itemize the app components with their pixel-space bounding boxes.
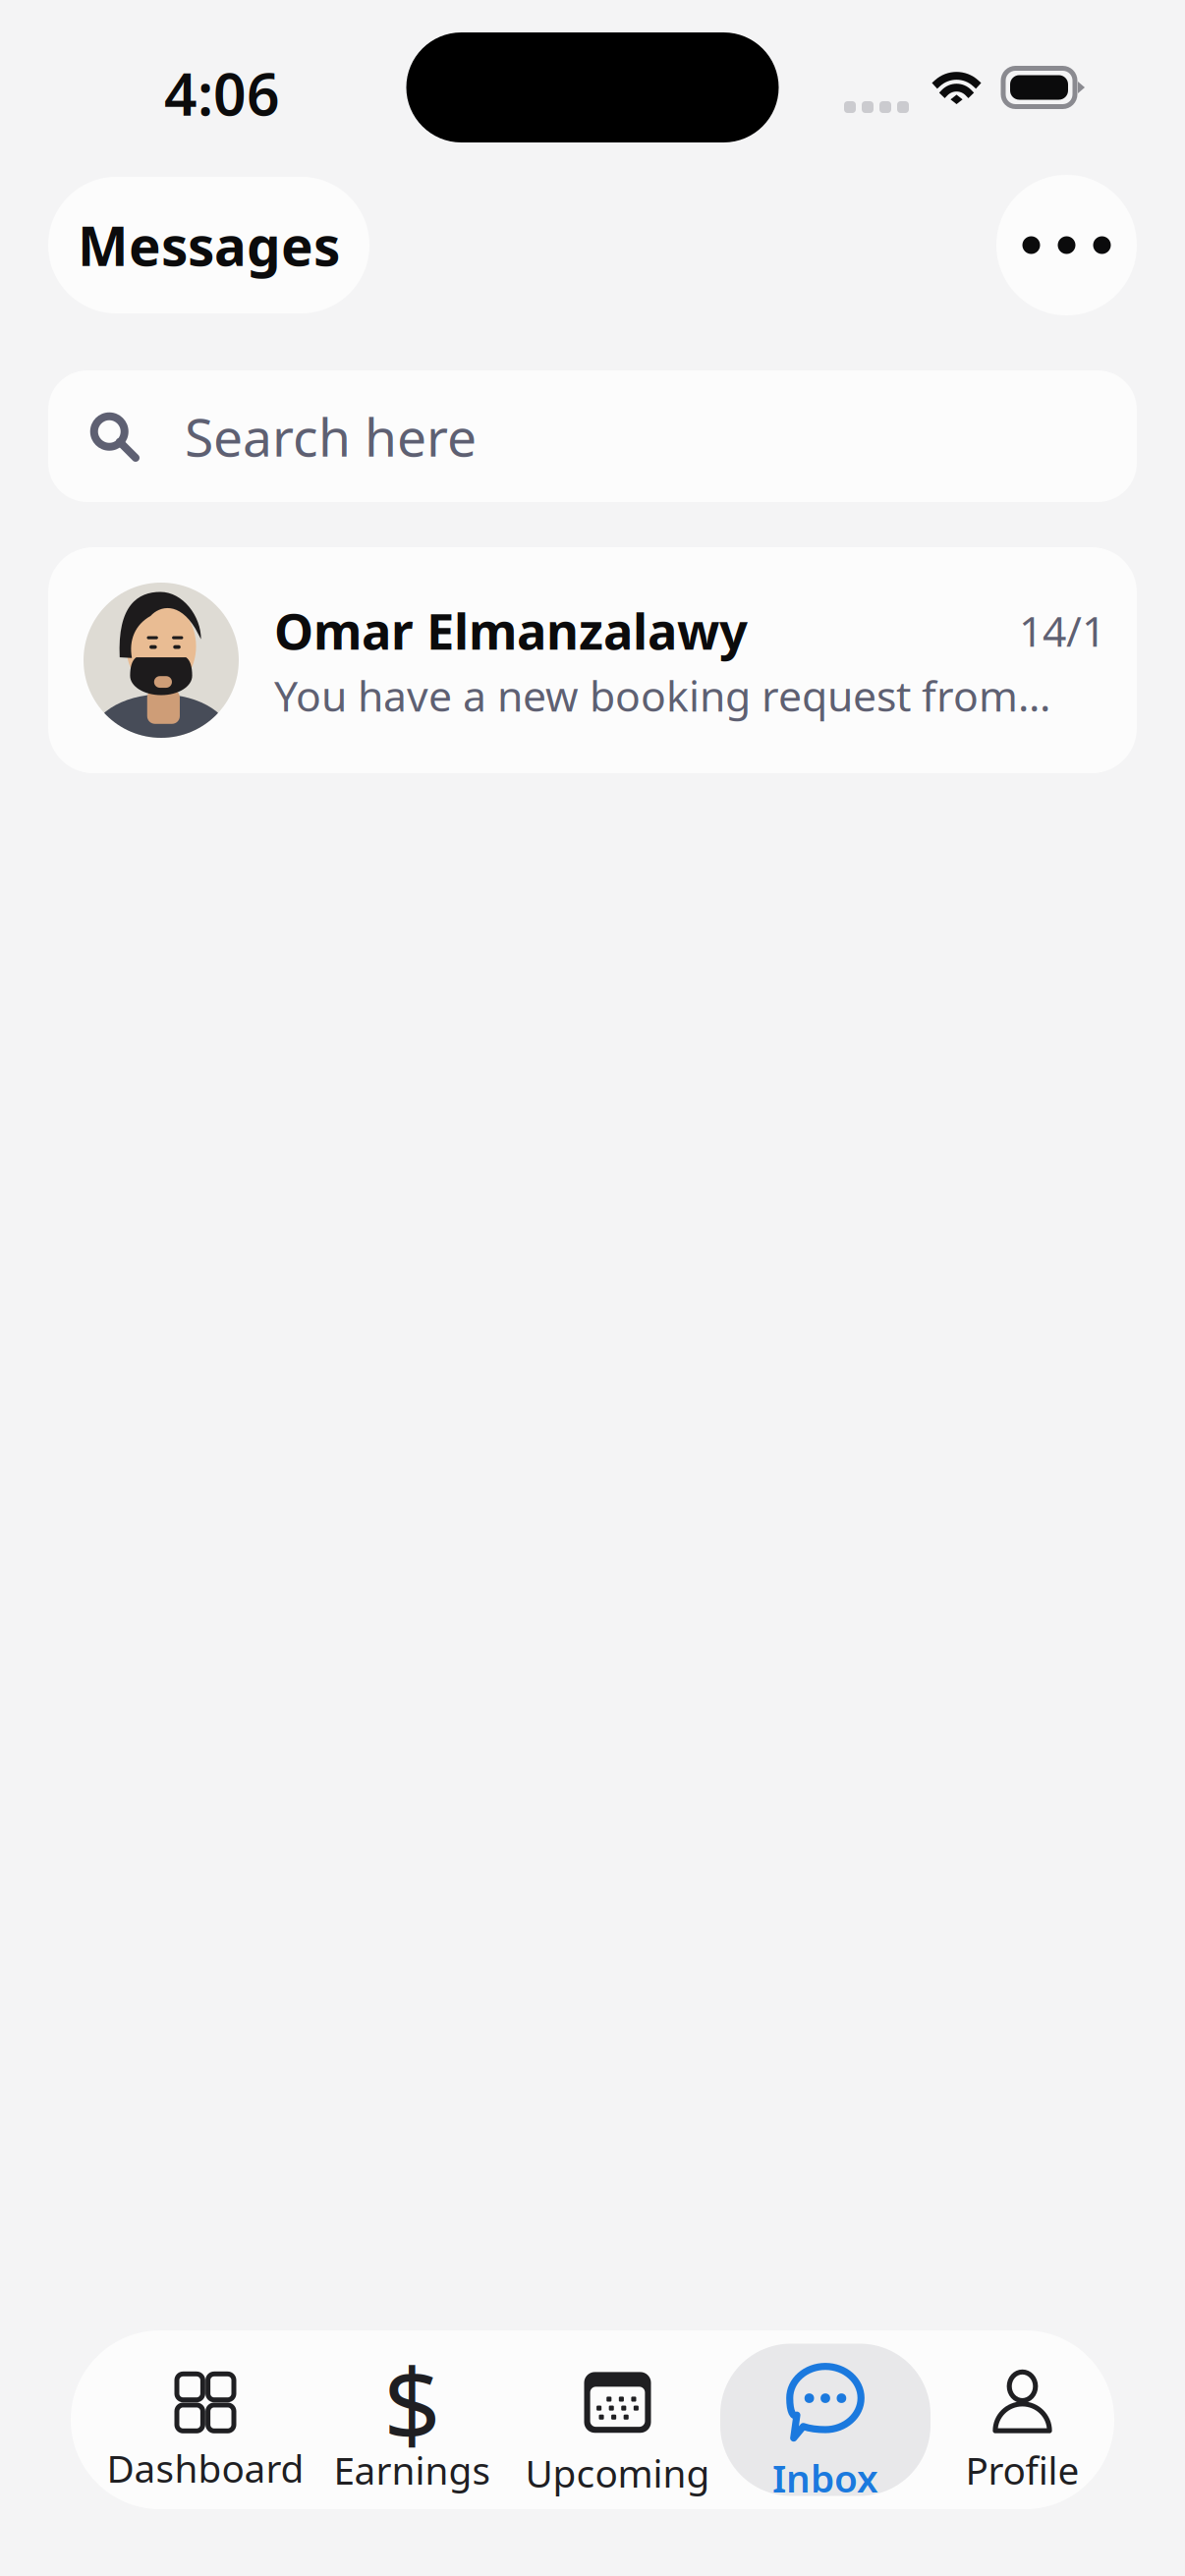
staticText: 14/1 [1019, 603, 1105, 658]
button[interactable]: $ [310, 2344, 515, 2496]
staticText: Dashboard [107, 2443, 304, 2493]
staticText: Messages [78, 209, 340, 281]
button[interactable]: Profile [931, 2344, 1114, 2496]
staticText: Upcoming [525, 2448, 710, 2498]
staticText: 4:06 [164, 55, 280, 132]
button[interactable]: Messages [48, 177, 369, 313]
button[interactable]: Dashboard [101, 2344, 310, 2496]
button[interactable]: Inbox [720, 2344, 931, 2496]
staticText: $ [383, 2335, 441, 2469]
button[interactable]: Upcoming [515, 2344, 720, 2496]
button[interactable]: Omar Elmanzalawy [48, 547, 1137, 773]
staticText: Earnings [334, 2445, 491, 2495]
staticText: You have a new booking request from... [274, 667, 1050, 723]
staticText: Omar Elmanzalawy [274, 597, 748, 663]
staticText: Search here [185, 401, 477, 471]
staticText: Profile [965, 2445, 1079, 2495]
staticText: Inbox [772, 2453, 878, 2503]
button[interactable]: More options [996, 175, 1137, 315]
button[interactable]: Search here [48, 370, 1137, 502]
